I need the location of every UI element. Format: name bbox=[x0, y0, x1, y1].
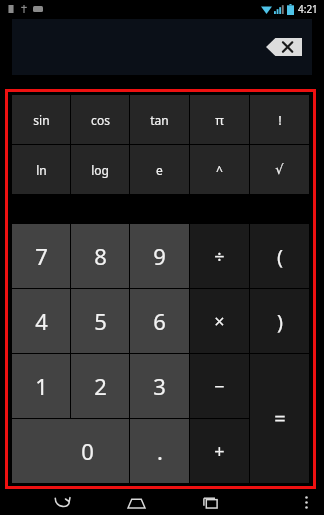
staticText: ÷ bbox=[214, 244, 225, 269]
staticText: ! bbox=[278, 111, 282, 129]
staticText: 4 bbox=[35, 306, 48, 336]
staticText: 0 bbox=[81, 436, 94, 466]
button[interactable]: 7 bbox=[12, 224, 70, 288]
button[interactable]: ÷ bbox=[190, 224, 249, 288]
button[interactable]: cos bbox=[71, 95, 129, 144]
staticText: 8 bbox=[94, 241, 107, 271]
button[interactable]: ! bbox=[250, 95, 309, 144]
button[interactable]: √ bbox=[250, 145, 309, 194]
button[interactable]: More options bbox=[292, 490, 320, 515]
button[interactable]: ) bbox=[250, 289, 309, 353]
staticText: . bbox=[157, 436, 163, 466]
staticText: sin bbox=[33, 112, 50, 128]
button[interactable]: ( bbox=[250, 224, 309, 288]
staticText: ln bbox=[36, 162, 47, 178]
staticText: + bbox=[214, 439, 225, 464]
staticText: − bbox=[214, 374, 225, 399]
button[interactable]: 8 bbox=[71, 224, 129, 288]
button[interactable]: + bbox=[190, 419, 249, 483]
button[interactable]: Recent apps bbox=[193, 490, 227, 515]
staticText: log bbox=[91, 162, 109, 178]
staticText: × bbox=[214, 309, 225, 334]
button[interactable]: Delete bbox=[266, 38, 302, 56]
button[interactable]: 9 bbox=[130, 224, 189, 288]
button[interactable]: 2 bbox=[71, 354, 129, 418]
staticText: e bbox=[156, 162, 163, 178]
button[interactable]: tan bbox=[130, 95, 189, 144]
button[interactable]: ln bbox=[12, 145, 70, 194]
button[interactable]: 4 bbox=[12, 289, 70, 353]
button[interactable]: 0 bbox=[12, 419, 129, 483]
button[interactable]: − bbox=[190, 354, 249, 418]
button[interactable]: Home bbox=[119, 490, 153, 515]
staticText: 9 bbox=[153, 241, 166, 271]
staticText: cos bbox=[91, 112, 110, 128]
button[interactable]: e bbox=[130, 145, 189, 194]
staticText: ) bbox=[277, 308, 283, 335]
staticText: 2 bbox=[94, 371, 107, 401]
button[interactable]: π bbox=[190, 95, 249, 144]
staticText: 6 bbox=[153, 306, 166, 336]
staticText: 4:21 bbox=[298, 2, 318, 16]
button[interactable]: sin bbox=[12, 95, 70, 144]
staticText: 3 bbox=[153, 371, 166, 401]
staticText: 1 bbox=[35, 371, 48, 401]
staticText: 5 bbox=[94, 306, 107, 336]
button[interactable]: 1 bbox=[12, 354, 70, 418]
button[interactable]: 3 bbox=[130, 354, 189, 418]
staticText: 7 bbox=[35, 241, 48, 271]
button[interactable]: × bbox=[190, 289, 249, 353]
button[interactable]: ^ bbox=[190, 145, 249, 194]
staticText: ( bbox=[277, 243, 283, 270]
button[interactable]: Back bbox=[45, 490, 79, 515]
button[interactable]: log bbox=[71, 145, 129, 194]
button[interactable]: 6 bbox=[130, 289, 189, 353]
button[interactable]: = bbox=[250, 354, 309, 483]
staticText: √ bbox=[275, 162, 284, 177]
staticText: ^ bbox=[216, 162, 223, 178]
staticText: tan bbox=[150, 112, 169, 128]
staticText: = bbox=[274, 405, 286, 432]
button[interactable]: . bbox=[130, 419, 189, 483]
button[interactable]: 5 bbox=[71, 289, 129, 353]
staticText: π bbox=[215, 111, 224, 129]
